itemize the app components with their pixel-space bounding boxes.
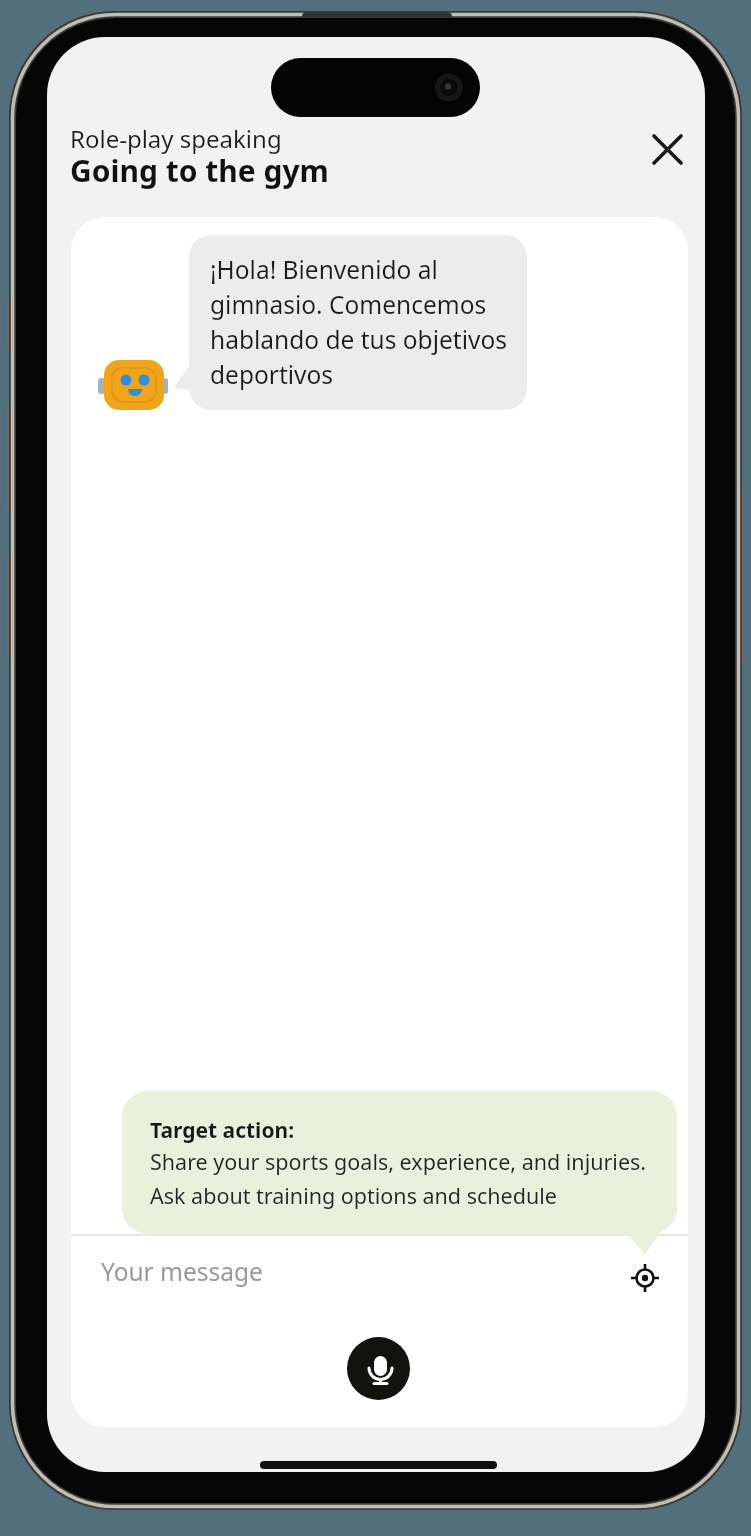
staticText: Share your sports goals, experience, and… (150, 1147, 647, 1210)
staticText: Your message (101, 1255, 263, 1288)
staticText: Going to the gym (70, 150, 329, 191)
staticText: ¡Hola! Bienvenido al gimnasio. Comencemo… (210, 253, 507, 391)
button[interactable] (347, 1337, 410, 1400)
staticText: Target action: (150, 1116, 295, 1145)
button[interactable] (643, 125, 693, 175)
button[interactable] (623, 1256, 667, 1300)
staticText: Role-play speaking (70, 122, 282, 155)
button[interactable]: Your message (91, 1249, 561, 1309)
